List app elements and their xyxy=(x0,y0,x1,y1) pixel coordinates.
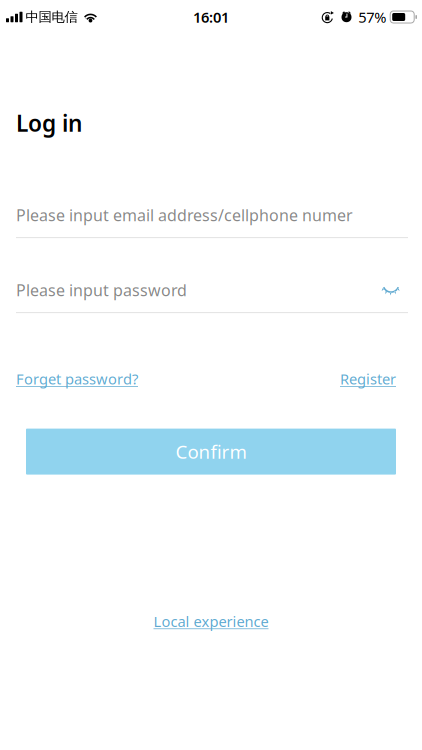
button[interactable]: Please input email address/cellphone num… xyxy=(16,205,406,225)
staticText: Local experience xyxy=(153,611,268,631)
staticText: Register xyxy=(340,369,396,389)
staticText: Please input email address/cellphone num… xyxy=(16,204,353,226)
button[interactable]: Show password xyxy=(382,284,406,296)
button[interactable]: Please input password xyxy=(16,280,382,300)
button[interactable]: Confirm xyxy=(26,429,396,475)
staticText: 中国电信 xyxy=(25,9,77,25)
staticText: Log in xyxy=(16,108,82,138)
staticText: 16:01 xyxy=(193,7,229,27)
button[interactable]: Register xyxy=(340,369,396,389)
button[interactable]: Forget password? xyxy=(16,369,138,389)
staticText: Confirm xyxy=(175,439,246,464)
staticText: Forget password? xyxy=(16,369,138,389)
button[interactable]: Local experience xyxy=(153,611,268,631)
staticText: 57% xyxy=(358,7,386,27)
staticText: Please input password xyxy=(16,279,187,301)
